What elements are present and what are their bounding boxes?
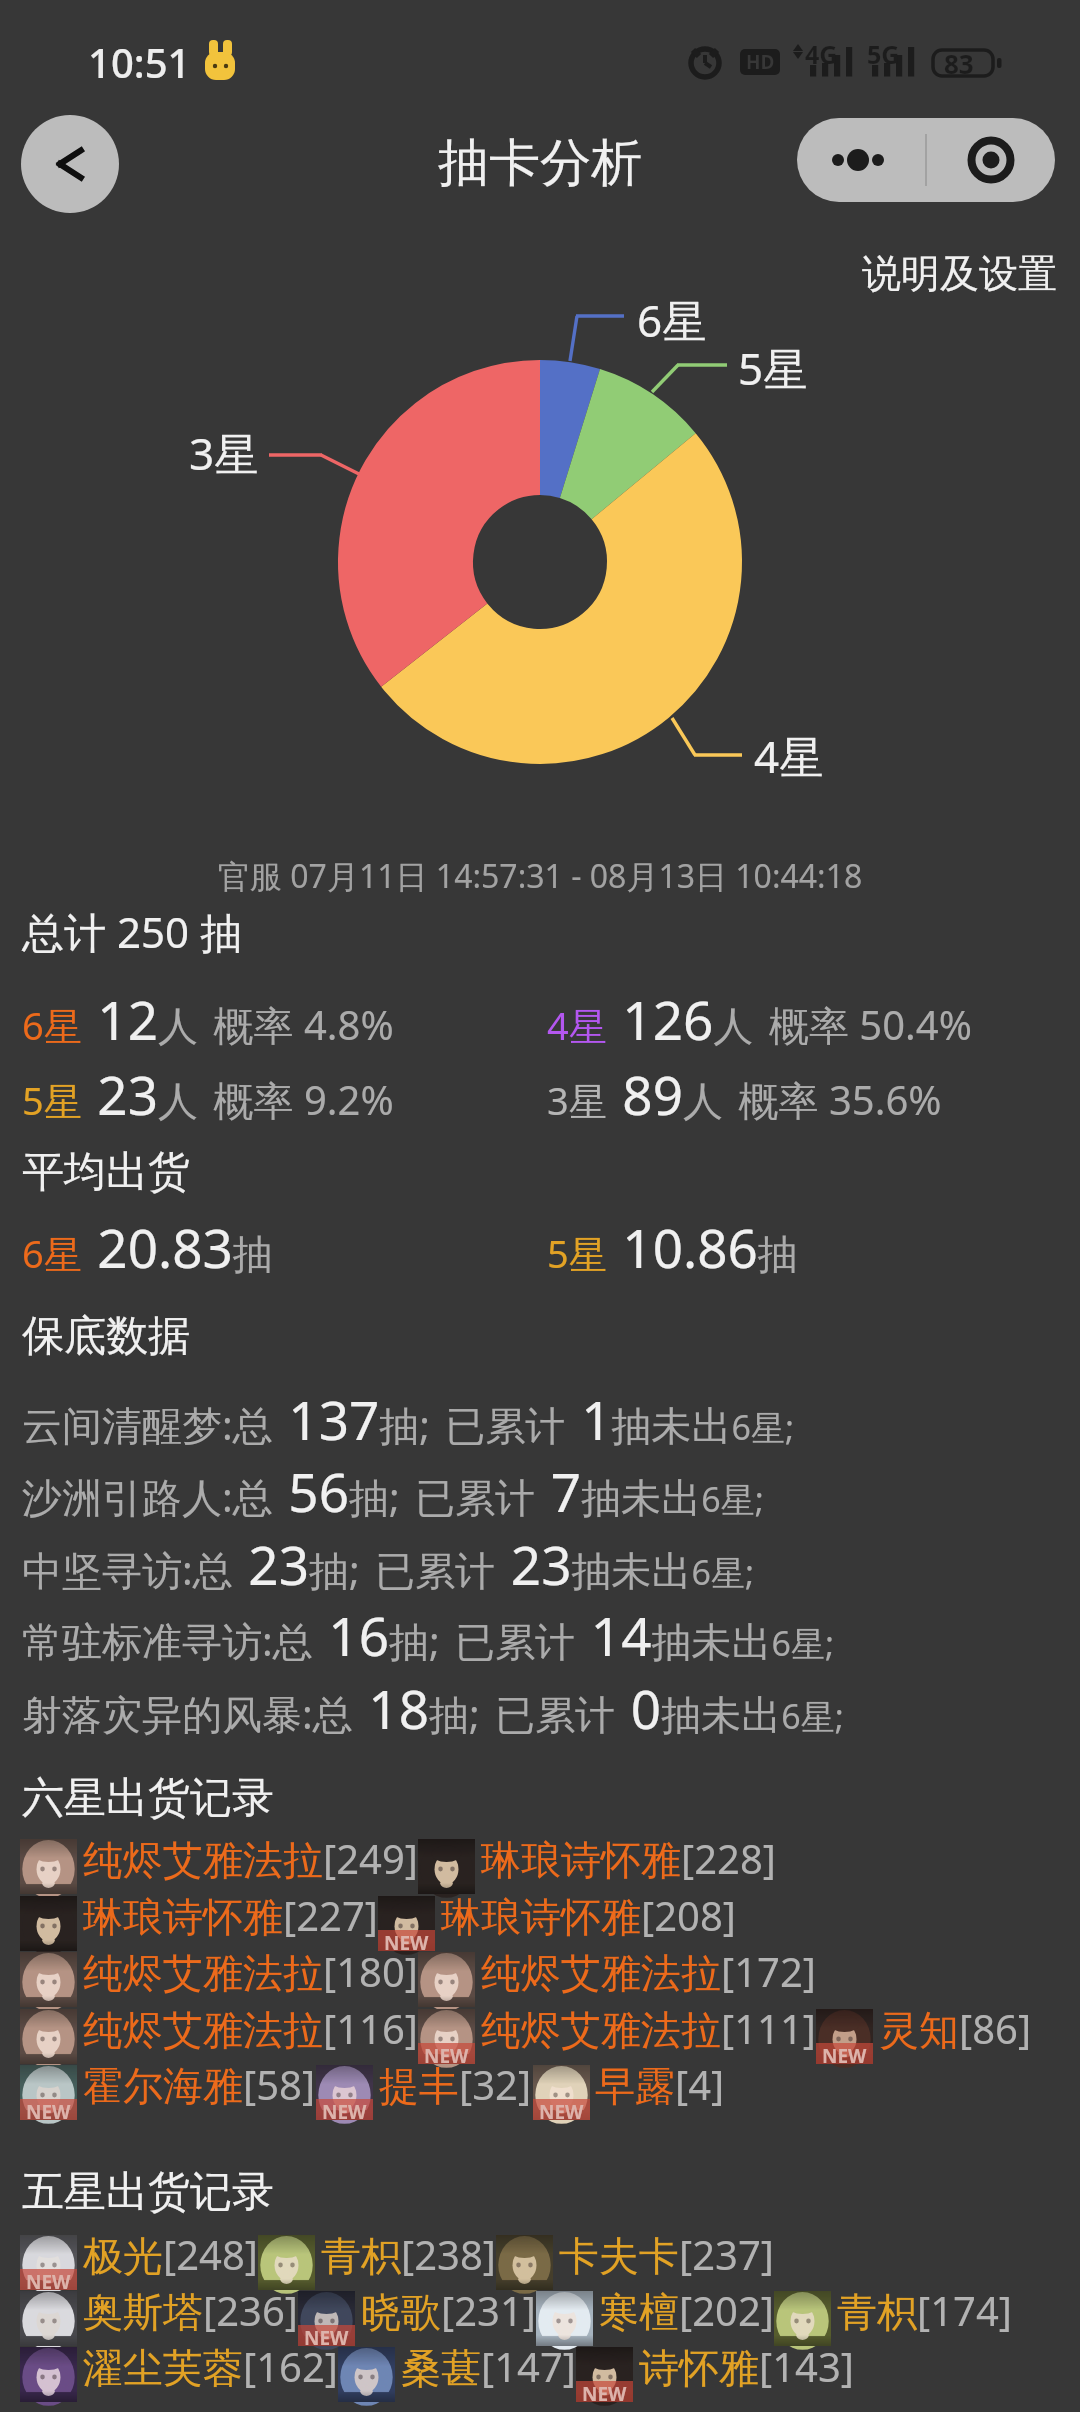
button[interactable]: 纯烬艾雅法拉 <box>20 2009 77 2064</box>
button[interactable]: 濯尘芙蓉 <box>20 2347 77 2402</box>
staticText: 琳琅诗怀雅[227] <box>83 1888 378 1943</box>
staticText: 青枳[174] <box>837 2283 1012 2338</box>
staticText: 6星 12人 概率 4.8% <box>22 976 394 1058</box>
staticText: NEW <box>26 2269 71 2290</box>
staticText: 抽卡分析 <box>438 131 642 195</box>
button[interactable]: 桑葚 <box>338 2347 395 2402</box>
staticText: NEW <box>26 2099 71 2120</box>
button[interactable]: 灵知 <box>816 2009 873 2064</box>
staticText: 青枳[238] <box>321 2227 496 2282</box>
staticText: 10:51 <box>88 35 191 89</box>
staticText: NEW <box>322 2099 367 2120</box>
staticText: 5星 23人 概率 9.2% <box>22 1051 394 1133</box>
staticText: HD <box>746 49 775 75</box>
staticText: 总计 250 抽 <box>22 903 242 960</box>
button[interactable]: 琳琅诗怀雅 <box>20 1896 77 1951</box>
button[interactable]: 纯烬艾雅法拉 <box>20 1952 77 2007</box>
staticText: 平均出货 <box>22 1146 190 1199</box>
button[interactable]: Close mini program <box>926 118 1055 202</box>
staticText: NEW <box>582 2381 627 2402</box>
staticText: 官服 07月11日 14:57:31 - 08月13日 10:44:18 <box>218 854 863 898</box>
staticText: 晓歌[231] <box>361 2283 536 2338</box>
staticText: 5星 10.86抽 <box>547 1204 798 1286</box>
staticText: NEW <box>822 2043 867 2064</box>
staticText: 常驻标准寻访:总 16抽; 已累计 14抽未出6星; <box>22 1592 835 1674</box>
button[interactable]: 琳琅诗怀雅 <box>418 1839 475 1894</box>
staticText: 纯烬艾雅法拉[116] <box>83 2001 418 2056</box>
staticText: 5G <box>867 37 900 71</box>
button[interactable]: 诗怀雅 <box>576 2347 633 2402</box>
staticText: NEW <box>424 2043 469 2064</box>
staticText: 极光[248] <box>83 2227 258 2282</box>
staticText: 沙洲引路人:总 56抽; 已累计 7抽未出6星; <box>22 1448 764 1530</box>
staticText: 保底数据 <box>22 1310 190 1363</box>
staticText: 提丰[32] <box>379 2057 532 2112</box>
button[interactable]: Back <box>21 115 119 213</box>
button[interactable]: 霍尔海雅 <box>20 2065 77 2120</box>
staticText: 3星 89人 概率 35.6% <box>547 1051 942 1133</box>
button[interactable]: 纯烬艾雅法拉 <box>20 1839 77 1894</box>
staticText: 云间清醒梦:总 137抽; 已累计 1抽未出6星; <box>22 1376 795 1458</box>
staticText: NEW <box>304 2325 349 2346</box>
button[interactable]: 卡夫卡 <box>496 2235 553 2290</box>
staticText: 4G <box>805 37 838 71</box>
button[interactable]: 晓歌 <box>298 2291 355 2346</box>
button[interactable]: 青枳 <box>258 2235 315 2290</box>
staticText: 纯烬艾雅法拉[180] <box>83 1944 418 1999</box>
button[interactable]: 极光 <box>20 2235 77 2290</box>
staticText: 5星 <box>738 338 808 398</box>
staticText: 卡夫卡[237] <box>559 2227 774 2282</box>
staticText: 纯烬艾雅法拉[111] <box>481 2001 816 2056</box>
button[interactable]: 纯烬艾雅法拉 <box>418 1952 475 2007</box>
staticText: 五星出货记录 <box>22 2166 274 2219</box>
staticText: 六星出货记录 <box>22 1772 274 1825</box>
staticText: 3星 <box>189 423 259 483</box>
staticText: 霍尔海雅[58] <box>83 2057 316 2112</box>
staticText: 奥斯塔[236] <box>83 2283 298 2338</box>
button[interactable]: 寒檀 <box>536 2291 593 2346</box>
button[interactable]: 纯烬艾雅法拉 <box>418 2009 475 2064</box>
staticText: NEW <box>384 1930 429 1951</box>
button[interactable]: More options <box>797 118 926 202</box>
staticText: 诗怀雅[143] <box>639 2339 854 2394</box>
staticText: 纯烬艾雅法拉[172] <box>481 1944 816 1999</box>
staticText: 中坚寻访:总 23抽; 已累计 23抽未出6星; <box>22 1521 755 1603</box>
staticText: 6星 20.83抽 <box>22 1204 273 1286</box>
staticText: 早露[4] <box>595 2057 725 2112</box>
button[interactable]: 奥斯塔 <box>20 2291 77 2346</box>
staticText: 4星 <box>754 726 824 786</box>
button[interactable]: 琳琅诗怀雅 <box>378 1896 435 1951</box>
staticText: 83 <box>944 46 974 81</box>
button[interactable]: 提丰 <box>316 2065 373 2120</box>
staticText: 琳琅诗怀雅[228] <box>481 1831 776 1886</box>
staticText: 琳琅诗怀雅[208] <box>441 1888 736 1943</box>
staticText: 4星 126人 概率 50.4% <box>547 976 972 1058</box>
staticText: 纯烬艾雅法拉[249] <box>83 1831 418 1886</box>
staticText: 濯尘芙蓉[162] <box>83 2339 338 2394</box>
staticText: 桑葚[147] <box>401 2339 576 2394</box>
staticText: 射落灾异的风暴:总 18抽; 已累计 0抽未出6星; <box>22 1665 844 1747</box>
button[interactable]: 青枳 <box>774 2291 831 2346</box>
button[interactable]: 早露 <box>533 2065 590 2120</box>
staticText: NEW <box>539 2099 584 2120</box>
staticText: 6星 <box>637 290 707 350</box>
staticText: 寒檀[202] <box>599 2283 774 2338</box>
staticText: 灵知[86] <box>879 2001 1032 2056</box>
